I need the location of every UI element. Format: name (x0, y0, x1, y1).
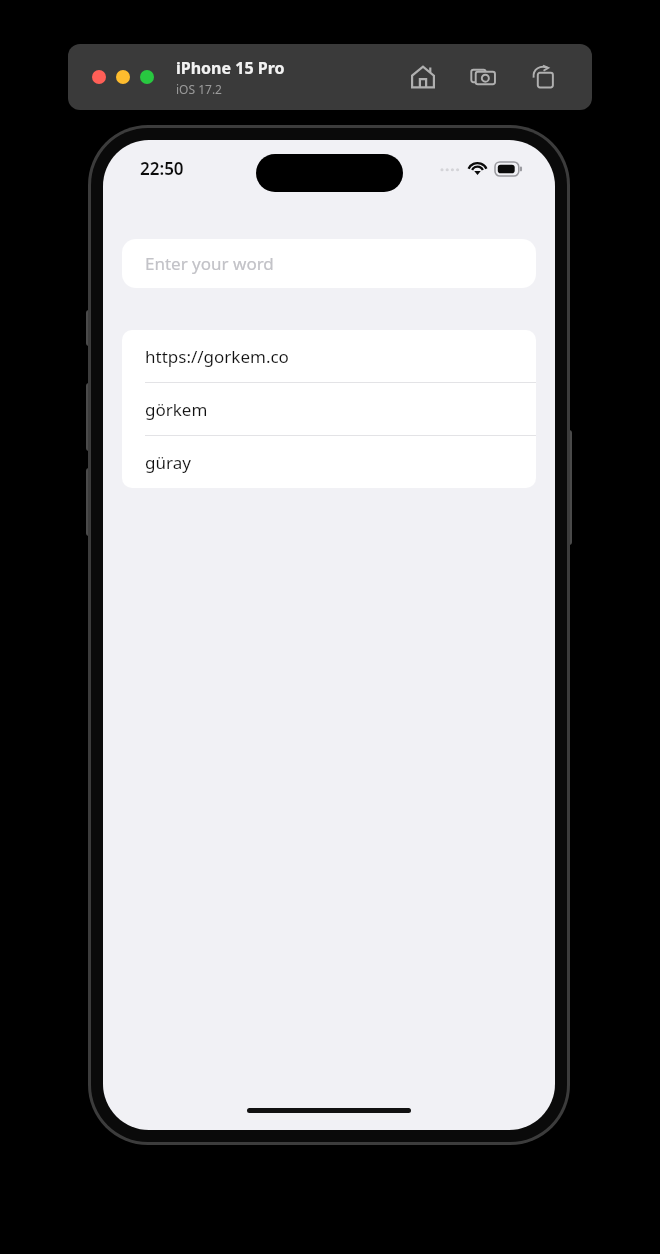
staticText: iPhone 15 Pro (176, 57, 285, 79)
staticText: görkem (145, 398, 208, 421)
button[interactable]: Rotate (520, 54, 566, 100)
staticText: güray (145, 451, 191, 474)
staticText: https://gorkem.co (145, 345, 289, 368)
button[interactable]: Enter your word (122, 239, 536, 288)
staticText: iOS 17.2 (176, 81, 222, 97)
button[interactable]: Window control (92, 70, 106, 84)
button[interactable]: güray (122, 436, 536, 488)
button[interactable]: görkem (122, 383, 536, 435)
button[interactable]: Window control (140, 70, 154, 84)
button[interactable]: https://gorkem.co (122, 330, 536, 382)
button[interactable]: Window control (116, 70, 130, 84)
button[interactable]: Screenshot (460, 54, 506, 100)
staticText: Enter your word (145, 252, 274, 275)
staticText: 22:50 (140, 157, 184, 180)
button[interactable]: Home (400, 54, 446, 100)
